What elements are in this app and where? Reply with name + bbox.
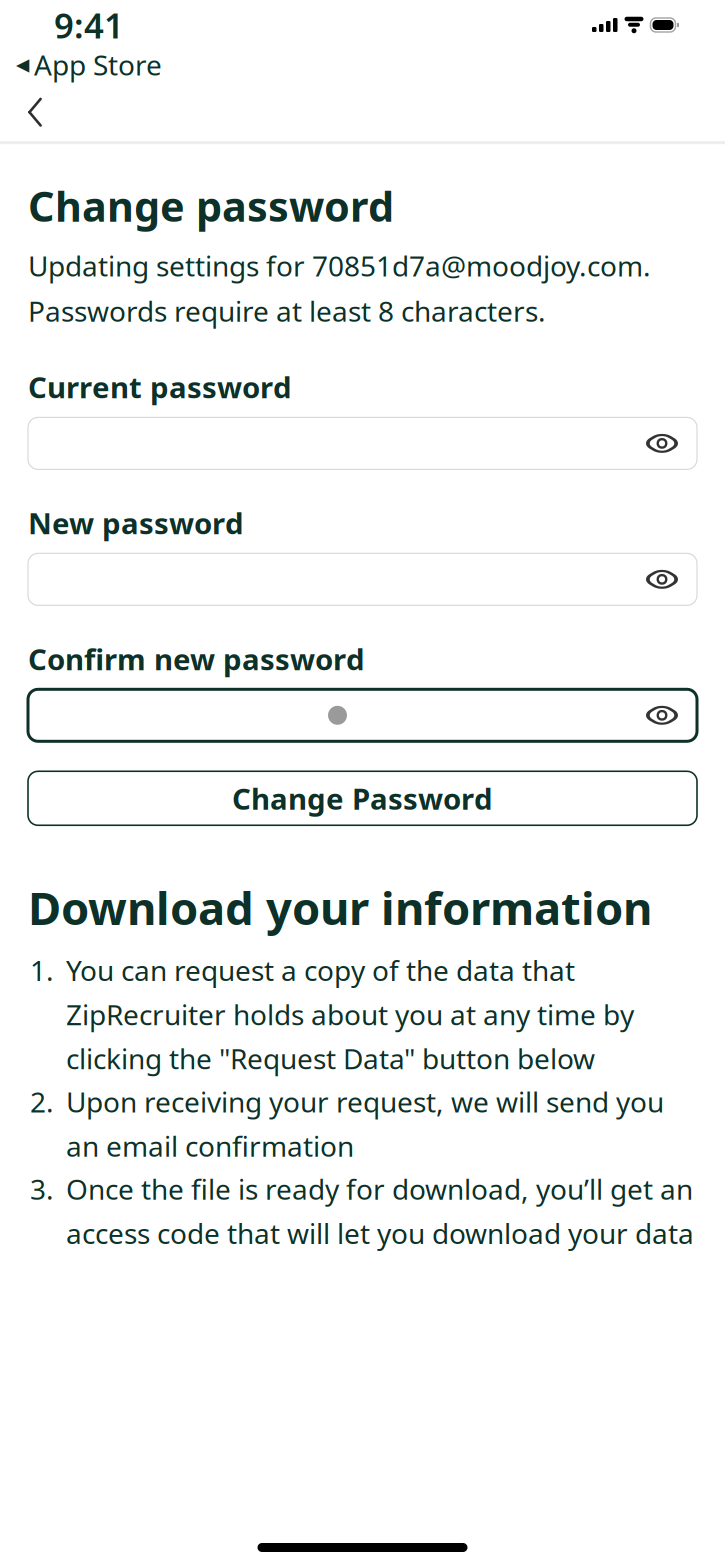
staticText: 9:41 xyxy=(54,2,124,48)
button[interactable]: Change Password xyxy=(28,771,697,825)
staticText: Current password xyxy=(28,367,292,406)
staticText: Confirm new password xyxy=(28,639,365,678)
button[interactable]: New password xyxy=(28,553,697,605)
staticText: Change Password xyxy=(232,779,493,818)
staticText: Once the file is ready for download, you… xyxy=(66,1170,694,1252)
staticText: Upon receiving your request, we will sen… xyxy=(66,1083,664,1164)
button[interactable]: Back xyxy=(0,84,46,140)
staticText: ◀ xyxy=(16,55,29,74)
staticText: Download your information xyxy=(28,877,652,937)
staticText: 1. xyxy=(30,951,54,989)
staticText: 2. xyxy=(30,1083,54,1120)
staticText: 3. xyxy=(30,1170,54,1208)
staticText: Change password xyxy=(28,178,394,233)
staticText: You can request a copy of the data that … xyxy=(66,951,634,1077)
button[interactable]: Current password xyxy=(28,417,697,469)
button[interactable]: Confirm new password xyxy=(28,689,697,741)
staticText: Updating settings for 70851d7a@moodjoy.c… xyxy=(28,247,651,329)
staticText: App Store xyxy=(34,46,162,83)
staticText: New password xyxy=(28,503,244,542)
